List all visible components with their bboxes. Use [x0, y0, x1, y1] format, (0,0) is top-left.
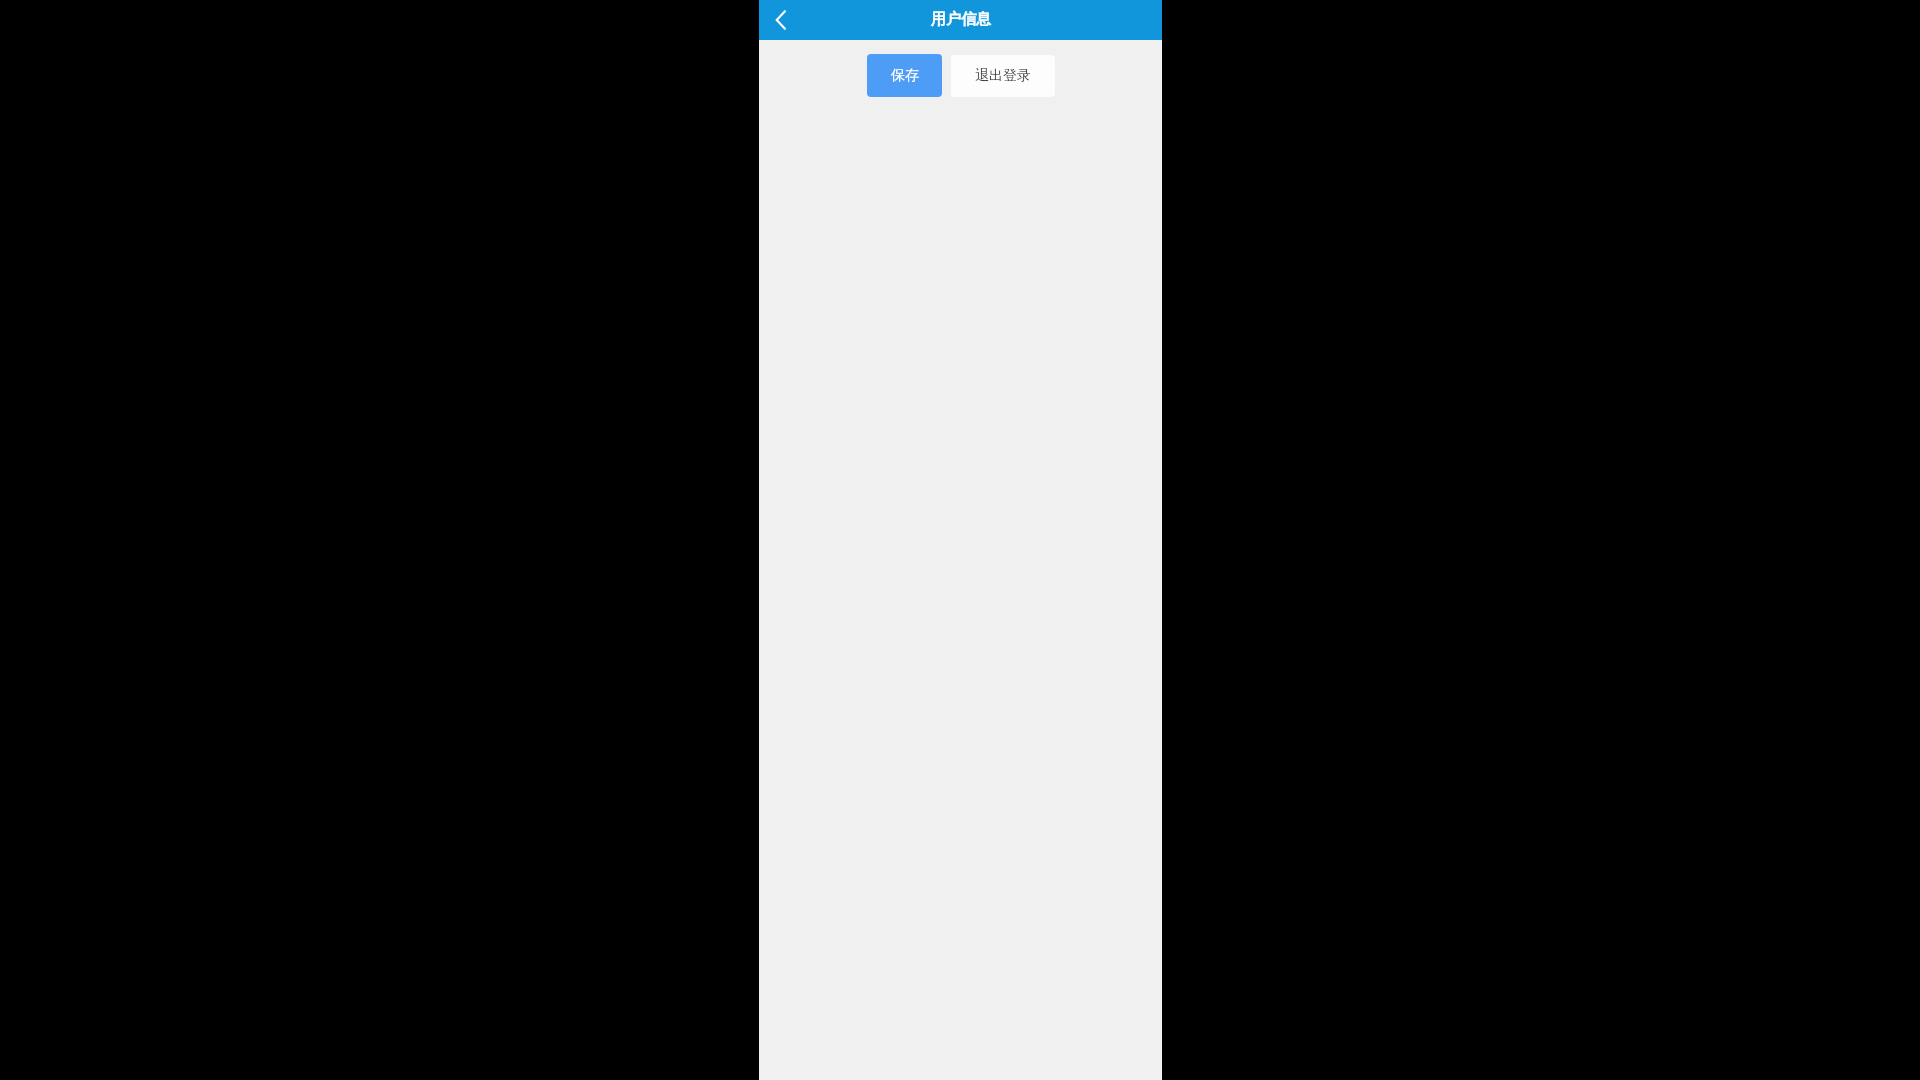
- staticText: 保存: [891, 67, 919, 85]
- button[interactable]: Back: [759, 0, 803, 40]
- button[interactable]: 退出登录: [951, 55, 1055, 97]
- staticText: 用户信息: [931, 10, 991, 29]
- button[interactable]: 保存: [867, 54, 942, 97]
- staticText: 退出登录: [975, 67, 1031, 85]
